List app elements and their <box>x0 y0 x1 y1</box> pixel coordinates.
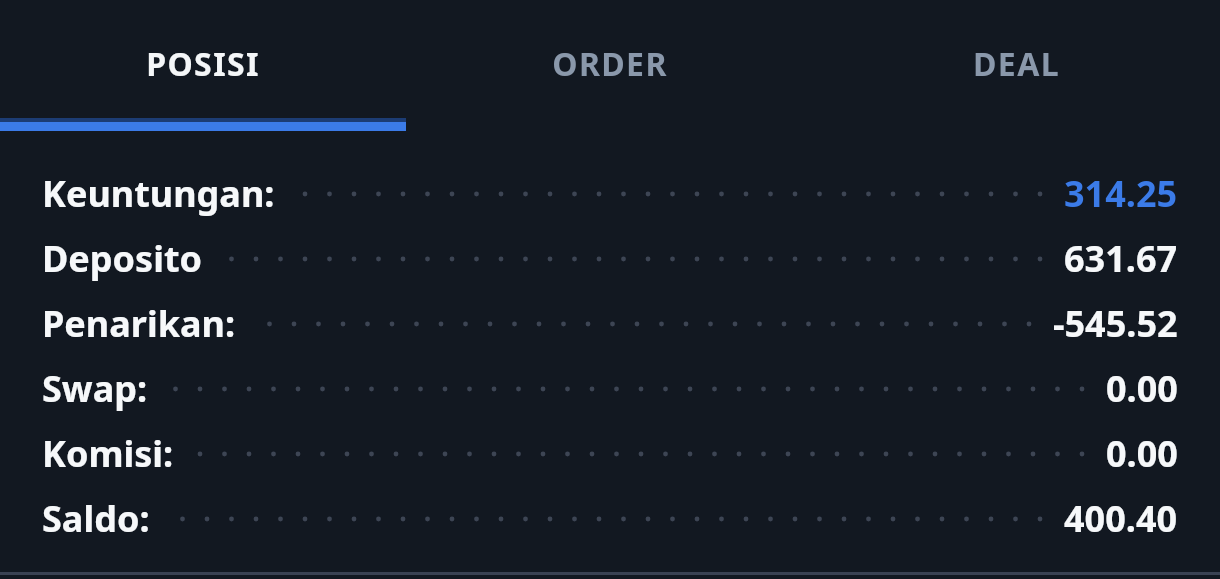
staticText: POSISI <box>146 42 260 86</box>
button[interactable]: Komisi: <box>0 421 1220 486</box>
staticText: Deposito <box>42 234 203 283</box>
staticText: ORDER <box>552 42 668 86</box>
button[interactable]: DEAL <box>813 0 1220 131</box>
staticText: 314.25 <box>1064 169 1178 218</box>
staticText: 0.00 <box>1106 429 1178 478</box>
button[interactable]: Keuntungan: <box>0 131 1220 226</box>
staticText: Komisi: <box>42 429 174 478</box>
staticText: Penarikan: <box>42 299 236 348</box>
staticText: 0.00 <box>1106 364 1178 413</box>
staticText: 631.67 <box>1064 234 1178 283</box>
staticText: Saldo: <box>42 494 150 543</box>
staticText: DEAL <box>973 42 1060 86</box>
button[interactable]: Saldo: <box>0 486 1220 551</box>
button[interactable]: ORDER <box>406 0 813 131</box>
staticText: -545.52 <box>1053 299 1178 348</box>
button[interactable]: Penarikan: <box>0 291 1220 356</box>
button[interactable]: POSISI <box>0 0 406 131</box>
staticText: Keuntungan: <box>42 169 275 218</box>
button[interactable]: Deposito <box>0 226 1220 291</box>
staticText: 400.40 <box>1064 494 1178 543</box>
staticText: Swap: <box>42 364 148 413</box>
button[interactable]: Swap: <box>0 356 1220 421</box>
